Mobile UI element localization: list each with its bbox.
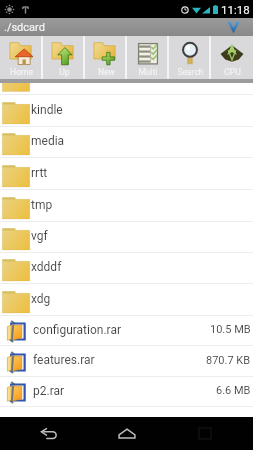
button[interactable]: CPU xyxy=(211,36,253,79)
staticText: Search xyxy=(177,67,204,77)
staticText: xdg xyxy=(31,292,51,306)
staticText: CPU xyxy=(224,67,241,77)
button[interactable]: Home xyxy=(0,36,43,79)
button[interactable]: Search xyxy=(169,36,211,79)
staticText: Home xyxy=(10,67,33,77)
button[interactable]: Multi xyxy=(127,36,169,79)
staticText: 6.6 MB xyxy=(216,384,251,397)
staticText: features.rar xyxy=(33,353,95,367)
button[interactable]: p2.rar xyxy=(0,377,253,406)
staticText: tmp xyxy=(31,198,53,212)
staticText: kindle xyxy=(31,103,63,117)
staticText: 11:18 xyxy=(221,3,250,16)
staticText: xdddf xyxy=(31,260,62,274)
staticText: configuration.rar xyxy=(33,323,122,337)
button[interactable]: rrtt xyxy=(0,158,253,189)
button[interactable]: tmp xyxy=(0,190,253,221)
button[interactable]: New xyxy=(85,36,127,79)
button[interactable]: xdddf xyxy=(0,253,253,283)
staticText: Up xyxy=(59,67,70,77)
button[interactable]: Up xyxy=(43,36,85,79)
staticText: 10.5 MB xyxy=(210,323,251,336)
button[interactable] xyxy=(0,83,253,94)
staticText: 870.7 KB xyxy=(206,354,251,367)
button[interactable]: vgf xyxy=(0,222,253,252)
button[interactable]: Back xyxy=(18,417,78,450)
staticText: media xyxy=(31,134,65,148)
staticText: rrtt xyxy=(31,166,48,180)
button[interactable]: features.rar xyxy=(0,346,253,376)
button[interactable]: kindle xyxy=(0,95,253,126)
staticText: New xyxy=(98,67,115,77)
button[interactable]: media xyxy=(0,127,253,157)
staticText: p2.rar xyxy=(33,384,65,398)
staticText: vgf xyxy=(31,229,48,243)
button[interactable]: xdg xyxy=(0,284,253,315)
button[interactable]: Home xyxy=(97,417,157,450)
button[interactable]: configuration.rar xyxy=(0,316,253,345)
staticText: ./sdcard xyxy=(4,21,45,34)
staticText: Multi xyxy=(138,67,158,77)
